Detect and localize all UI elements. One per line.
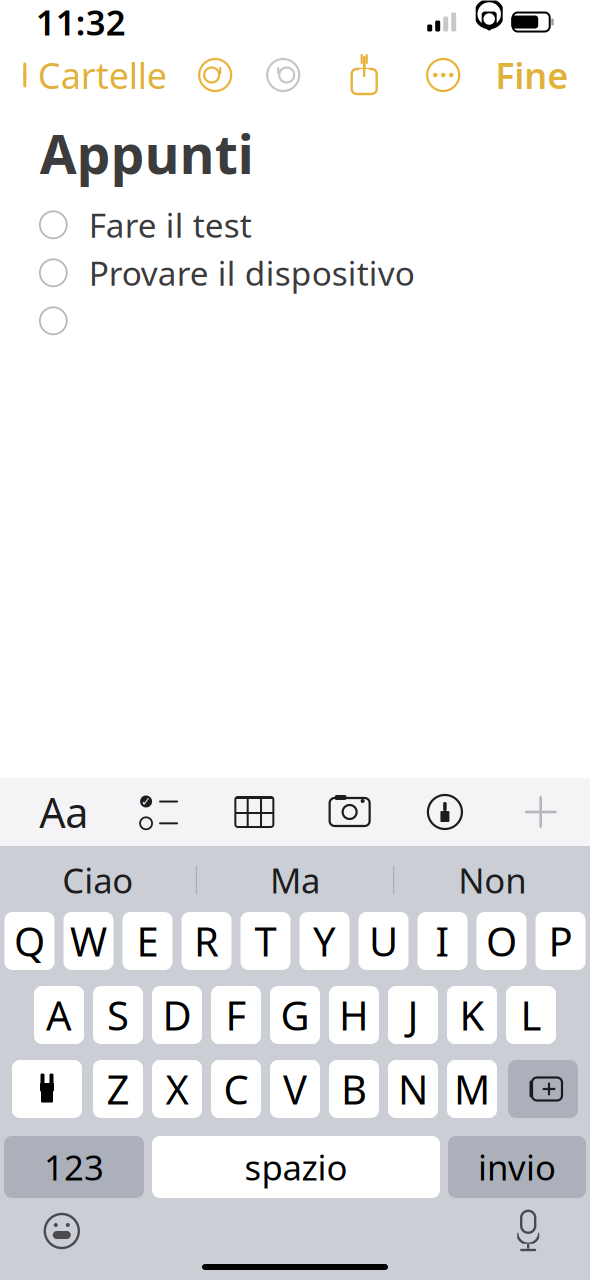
button[interactable]: T bbox=[240, 912, 290, 970]
button[interactable]: spazio bbox=[152, 1136, 440, 1198]
button[interactable]: Tabella bbox=[222, 784, 286, 840]
button[interactable]: Altro bbox=[425, 57, 461, 93]
button[interactable]: E bbox=[122, 912, 172, 970]
button[interactable]: W bbox=[63, 912, 113, 970]
button[interactable]: O bbox=[476, 912, 526, 970]
staticText: Aa bbox=[39, 785, 88, 839]
button[interactable]: N bbox=[388, 1060, 438, 1118]
button[interactable]: J bbox=[388, 986, 438, 1044]
staticText: U bbox=[369, 914, 398, 967]
staticText: N bbox=[398, 1062, 428, 1115]
staticText: C bbox=[223, 1062, 248, 1115]
staticText: Q bbox=[14, 914, 45, 967]
staticText: Z bbox=[106, 1062, 129, 1115]
button[interactable]: D bbox=[152, 986, 202, 1044]
button[interactable]: Maiuscole bbox=[12, 1060, 82, 1118]
button[interactable]: C bbox=[211, 1060, 261, 1118]
staticText: ✓ bbox=[141, 795, 151, 808]
button[interactable]: Ripristina bbox=[265, 57, 301, 93]
staticText: K bbox=[459, 988, 484, 1041]
staticText: I bbox=[435, 914, 449, 967]
staticText: D bbox=[162, 988, 191, 1041]
staticText: spazio bbox=[244, 1144, 347, 1190]
button[interactable]: Formato bbox=[32, 784, 96, 840]
staticText: X bbox=[165, 1062, 188, 1115]
button[interactable]: Emoji bbox=[32, 1203, 92, 1259]
button[interactable]: 123 bbox=[4, 1136, 144, 1198]
button[interactable]: L bbox=[506, 986, 556, 1044]
staticText: J bbox=[407, 988, 418, 1041]
button[interactable]: V bbox=[270, 1060, 320, 1118]
button[interactable]: Cartelle bbox=[14, 45, 171, 105]
staticText: H bbox=[339, 988, 369, 1041]
staticText: V bbox=[283, 1062, 307, 1115]
staticText: G bbox=[280, 988, 309, 1041]
button[interactable]: Annulla bbox=[197, 57, 233, 93]
button[interactable]: P bbox=[535, 912, 585, 970]
staticText: M bbox=[454, 1062, 490, 1115]
button[interactable]: invio bbox=[448, 1136, 586, 1198]
button[interactable]: B bbox=[329, 1060, 379, 1118]
staticText: Cartelle bbox=[38, 51, 167, 99]
button[interactable]: Cancella bbox=[508, 1060, 578, 1118]
button[interactable]: A bbox=[34, 986, 84, 1044]
button[interactable]: G bbox=[270, 986, 320, 1044]
staticText: Fine bbox=[495, 51, 568, 99]
staticText: Provare il dispositivo bbox=[89, 251, 415, 295]
button[interactable]: S bbox=[93, 986, 143, 1044]
button[interactable]: X bbox=[152, 1060, 202, 1118]
button[interactable]: Elenco di controllo bbox=[127, 784, 191, 840]
button[interactable]: Z bbox=[93, 1060, 143, 1118]
button[interactable]: Dettatura bbox=[498, 1203, 558, 1259]
staticText: Ciao bbox=[62, 857, 133, 903]
button[interactable]: U bbox=[358, 912, 408, 970]
button[interactable]: Ciao bbox=[0, 854, 196, 906]
staticText: Appunti bbox=[40, 118, 254, 189]
staticText: A bbox=[46, 988, 72, 1041]
button[interactable]: Chiudi bbox=[508, 784, 572, 840]
staticText: B bbox=[341, 1062, 367, 1115]
button[interactable]: R bbox=[181, 912, 231, 970]
staticText: 11:32 bbox=[36, 0, 126, 45]
button[interactable]: Disegna bbox=[413, 784, 477, 840]
button[interactable]: H bbox=[329, 986, 379, 1044]
staticText: O bbox=[486, 914, 517, 967]
staticText: L bbox=[520, 988, 541, 1041]
button[interactable]: M bbox=[447, 1060, 497, 1118]
staticText: Ma bbox=[270, 857, 320, 903]
button[interactable]: Q bbox=[4, 912, 54, 970]
staticText: F bbox=[225, 988, 246, 1041]
staticText: Non bbox=[458, 857, 526, 903]
button[interactable]: K bbox=[447, 986, 497, 1044]
button[interactable]: Fotocamera bbox=[318, 784, 382, 840]
staticText: Y bbox=[313, 914, 336, 967]
staticText: T bbox=[254, 914, 276, 967]
staticText: invio bbox=[478, 1144, 556, 1190]
staticText: P bbox=[548, 914, 572, 967]
button[interactable]: Y bbox=[299, 912, 349, 970]
button[interactable]: I bbox=[417, 912, 467, 970]
button[interactable]: F bbox=[211, 986, 261, 1044]
staticText: W bbox=[70, 914, 107, 967]
staticText: 123 bbox=[44, 1144, 104, 1190]
staticText: Fare il test bbox=[89, 203, 252, 247]
button[interactable]: Ma bbox=[197, 854, 393, 906]
button[interactable]: Non bbox=[394, 854, 590, 906]
staticText: R bbox=[194, 914, 219, 967]
button[interactable]: Condividi bbox=[347, 55, 381, 95]
button[interactable]: Fine bbox=[491, 45, 572, 105]
staticText: S bbox=[107, 988, 129, 1041]
staticText: E bbox=[136, 914, 158, 967]
